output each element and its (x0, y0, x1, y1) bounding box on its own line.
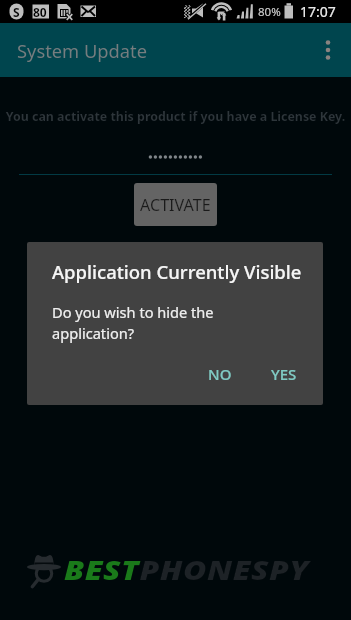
staticText: NO (208, 364, 232, 384)
staticText: 80 (33, 4, 47, 20)
button[interactable]: NO (198, 358, 242, 390)
staticText: System Update (17, 38, 147, 63)
staticText: Do you wish to hide the application? (52, 302, 214, 344)
staticText: 80% (258, 4, 281, 20)
button[interactable]: YES (261, 358, 307, 390)
button[interactable]: ACTIVATE (134, 183, 217, 226)
staticText: PHONESPY (139, 551, 309, 588)
staticText: YES (271, 364, 297, 384)
staticText: Application Currently Visible (52, 259, 302, 284)
staticText: BEST (64, 551, 139, 588)
button[interactable]: More options (305, 23, 351, 77)
staticText: 17:07 (300, 2, 336, 21)
staticText: S (13, 4, 20, 20)
staticText: You can activate this product if you hav… (0, 108, 351, 125)
staticText: ACTIVATE (140, 194, 211, 216)
